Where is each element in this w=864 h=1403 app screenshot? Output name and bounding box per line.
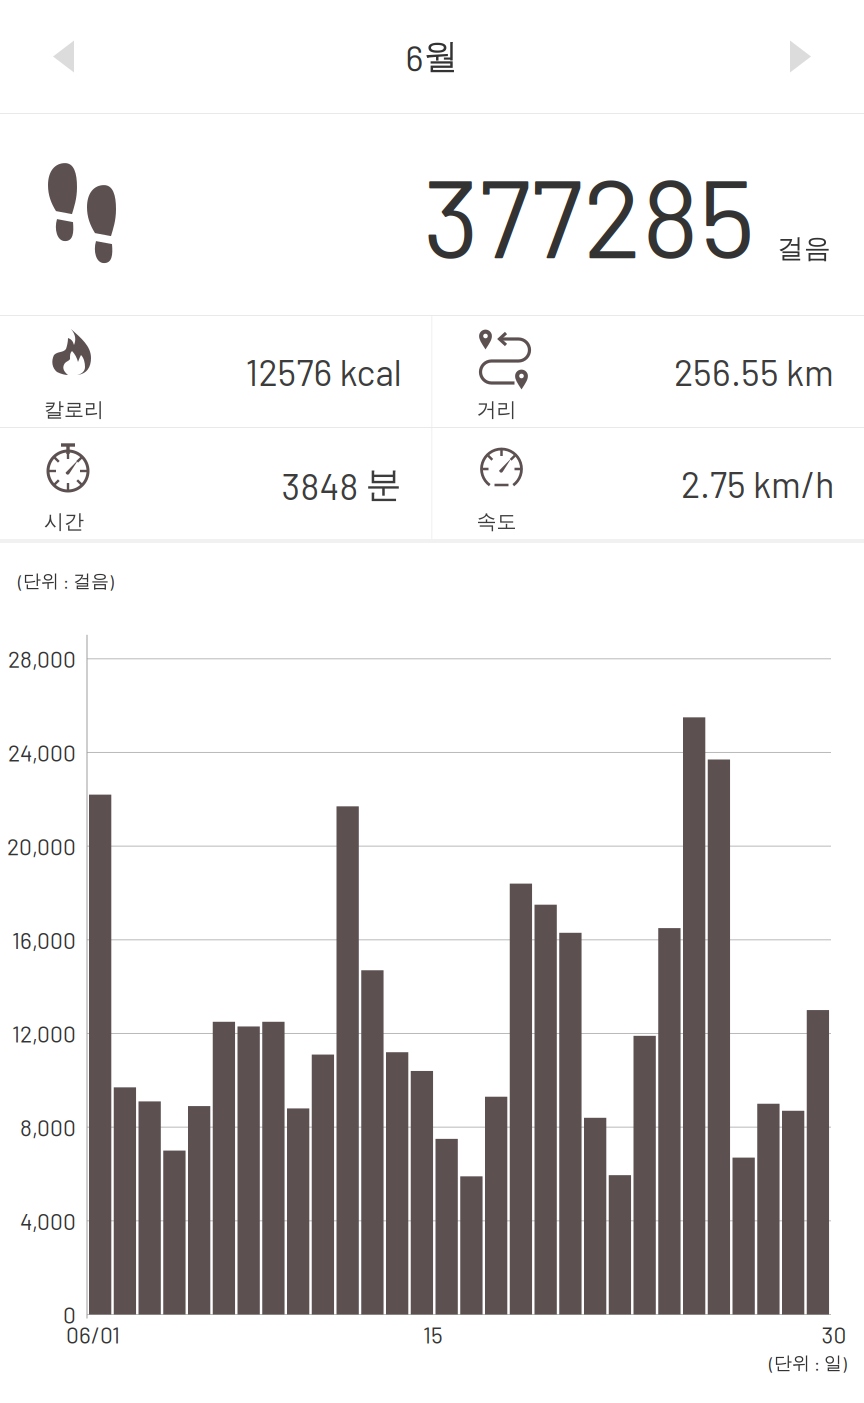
button[interactable]: 거리 bbox=[432, 316, 864, 427]
staticText: 12,000 bbox=[12, 1020, 76, 1047]
staticText: 6월 bbox=[405, 35, 458, 78]
staticText: 속도 bbox=[476, 509, 516, 534]
button[interactable]: 시간 bbox=[0, 428, 431, 539]
staticText: 377285 bbox=[423, 149, 755, 280]
staticText: 거리 bbox=[476, 397, 516, 422]
staticText: 3848 분 bbox=[281, 462, 401, 507]
button[interactable]: 속도 bbox=[432, 428, 864, 539]
staticText: 20,000 bbox=[7, 832, 76, 860]
staticText: 2.75 km/h bbox=[681, 462, 834, 505]
staticText: 8,000 bbox=[20, 1114, 76, 1141]
staticText: 4,000 bbox=[20, 1207, 76, 1234]
staticText: 06/01 bbox=[66, 1321, 120, 1348]
staticText: (단위 : 일) bbox=[769, 1352, 847, 1374]
staticText: 0 bbox=[63, 1301, 76, 1328]
button[interactable]: Next month bbox=[750, 0, 864, 113]
staticText: 24,000 bbox=[8, 739, 76, 766]
staticText: 28,000 bbox=[8, 645, 76, 672]
staticText: (단위 : 걸음) bbox=[18, 570, 114, 592]
staticText: 12576 kcal bbox=[245, 350, 401, 393]
button[interactable]: Previous month bbox=[0, 0, 114, 113]
staticText: 시간 bbox=[44, 509, 84, 534]
staticText: 256.55 km bbox=[674, 350, 834, 393]
button[interactable]: 칼로리 bbox=[0, 316, 431, 427]
staticText: 걸음 bbox=[777, 231, 831, 265]
staticText: 칼로리 bbox=[44, 397, 104, 422]
staticText: 15 bbox=[423, 1321, 443, 1348]
staticText: 16,000 bbox=[12, 926, 76, 953]
staticText: 30 bbox=[821, 1321, 846, 1348]
